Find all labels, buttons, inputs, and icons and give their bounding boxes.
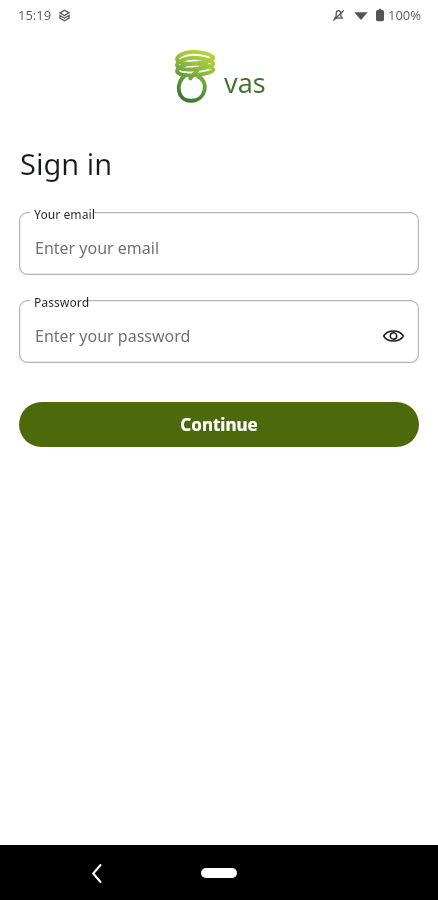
button[interactable]: Show password: [376, 319, 410, 353]
button[interactable]: Password: [19, 300, 419, 363]
button[interactable]: Home: [169, 858, 269, 888]
staticText: vas: [224, 64, 266, 101]
button[interactable]: Your email: [19, 212, 419, 275]
staticText: 100%: [388, 6, 422, 24]
button[interactable]: Continue: [19, 402, 419, 447]
staticText: Your email: [34, 206, 96, 222]
button[interactable]: Back: [75, 851, 119, 895]
staticText: 15:19: [18, 6, 52, 24]
staticText: Enter your password: [35, 325, 191, 347]
staticText: Continue: [180, 413, 258, 436]
staticText: Password: [34, 294, 90, 310]
staticText: Enter your email: [35, 237, 160, 259]
staticText: Sign in: [20, 144, 113, 183]
